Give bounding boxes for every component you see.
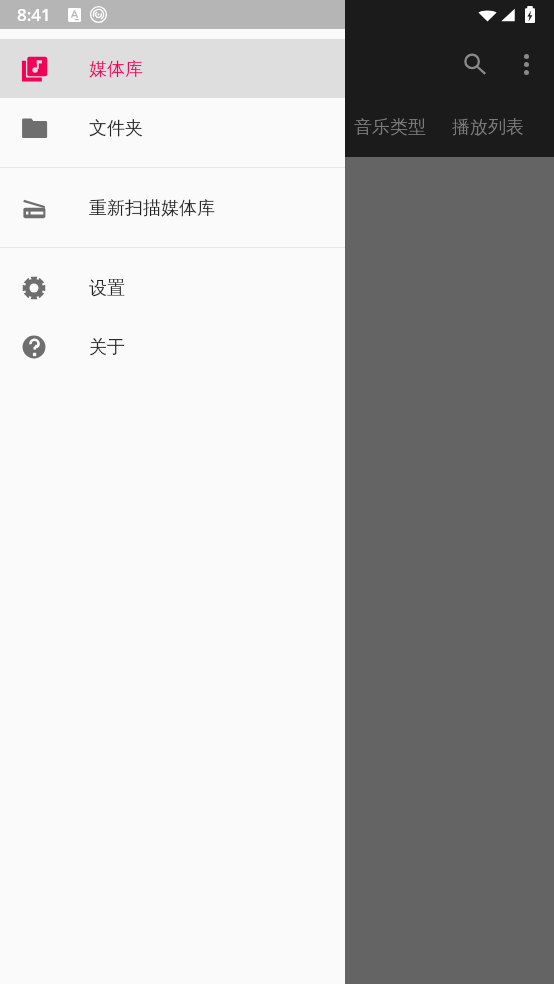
button[interactable]: 音乐类型	[341, 99, 439, 155]
button[interactable]: More options	[502, 40, 550, 88]
button[interactable]: 媒体库	[0, 39, 345, 98]
staticText: 8:41	[17, 3, 51, 26]
staticText: 播放列表	[452, 116, 524, 139]
button[interactable]: Search	[451, 40, 499, 88]
staticText: 关于	[89, 336, 125, 359]
button[interactable]: 设置	[0, 258, 345, 317]
button[interactable]: 关于	[0, 317, 345, 376]
staticText: 重新扫描媒体库	[89, 197, 215, 220]
button[interactable]: 重新扫描媒体库	[0, 178, 345, 237]
staticText: 媒体库	[89, 58, 143, 81]
staticText: 设置	[89, 277, 125, 300]
button[interactable]: 播放列表	[439, 99, 537, 155]
staticText: 文件夹	[89, 117, 143, 140]
button[interactable]: 文件夹	[0, 98, 345, 157]
staticText: 音乐类型	[354, 116, 426, 139]
